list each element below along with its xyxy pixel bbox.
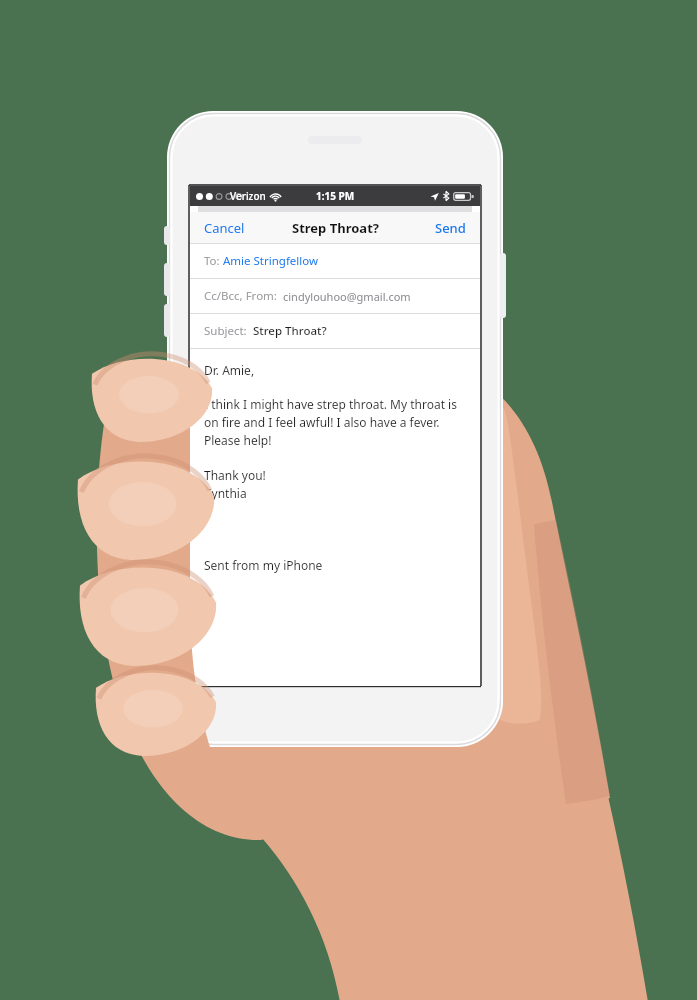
- staticText: To:: [204, 253, 223, 269]
- staticText: Verizon: [230, 189, 266, 203]
- button[interactable]: Send: [421, 212, 480, 243]
- staticText: Strep Throat?: [253, 323, 327, 339]
- staticText: I think I might have strep throat. My th…: [204, 396, 457, 449]
- button[interactable]: To:: [190, 244, 480, 278]
- staticText: Cc/Bcc, From:: [204, 288, 283, 304]
- staticText: 1:15 PM: [316, 189, 355, 203]
- staticText: Dr. Amie,: [204, 362, 255, 378]
- staticText: Sent from my iPhone: [204, 557, 323, 573]
- staticText: Cancel: [204, 219, 245, 236]
- button[interactable]: Cc/Bcc, From:: [190, 279, 480, 313]
- staticText: Send: [435, 219, 466, 236]
- staticText: Thank you! Cynthia: [204, 467, 266, 502]
- staticText: cindylouhoo@gmail.com: [283, 289, 411, 304]
- staticText: Subject:: [204, 323, 253, 339]
- button[interactable]: Cancel: [190, 212, 259, 243]
- button[interactable]: Dr. Amie,: [190, 349, 480, 686]
- button[interactable]: Subject:: [190, 314, 480, 348]
- staticText: Strep Throat?: [292, 219, 379, 237]
- staticText: Amie Stringfellow: [223, 253, 319, 269]
